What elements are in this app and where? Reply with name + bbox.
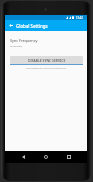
staticText: Global Settings (16, 23, 48, 29)
button[interactable]: Navigate up (5, 20, 16, 31)
staticText: 13:42 (76, 16, 83, 20)
button[interactable]: Sync Frequency (5, 38, 87, 48)
staticText: DISABLE SYNC SERVICE (28, 58, 66, 63)
button[interactable]: DISABLE SYNC SERVICE (10, 56, 83, 64)
button[interactable]: Home (41, 151, 51, 163)
button[interactable]: Back (18, 151, 28, 163)
button[interactable]: Recent apps (64, 151, 74, 163)
staticText: Sync Frequency (10, 38, 38, 43)
staticText: Last updated at 13:42:18 on 03/05/2019 (5, 67, 87, 70)
staticText: 30 seconds (10, 45, 23, 48)
